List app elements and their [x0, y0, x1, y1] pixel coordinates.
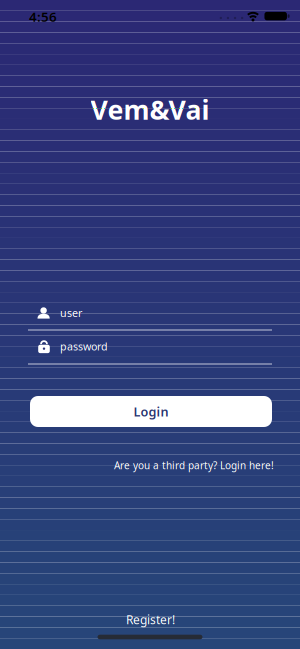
- button[interactable]: password: [28, 338, 272, 365]
- staticText: user: [60, 306, 82, 320]
- staticText: 4:56: [29, 7, 57, 26]
- button[interactable]: Register!: [126, 611, 175, 627]
- staticText: Vem&Vai: [90, 91, 209, 128]
- staticText: Register!: [126, 611, 175, 628]
- staticText: Login: [133, 403, 168, 420]
- staticText: password: [60, 339, 108, 353]
- button[interactable]: Login: [30, 396, 272, 427]
- button[interactable]: user: [28, 304, 272, 331]
- staticText: Are you a third party? Login here!: [114, 458, 274, 472]
- button[interactable]: Are you a third party? Login here!: [54, 458, 274, 472]
